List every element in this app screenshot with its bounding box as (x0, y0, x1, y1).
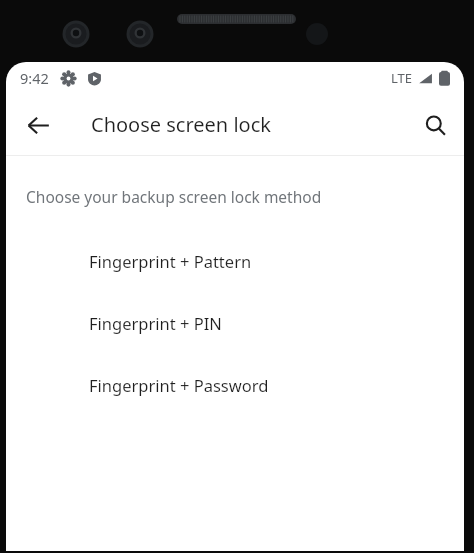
staticText: Fingerprint + Pattern (89, 250, 252, 272)
button[interactable]: Fingerprint + Password (6, 354, 464, 416)
staticText: Fingerprint + Password (89, 374, 269, 396)
button[interactable]: Fingerprint + PIN (6, 292, 464, 354)
staticText: 9:42 (20, 68, 49, 88)
button[interactable]: Fingerprint + Pattern (6, 230, 464, 292)
staticText: Fingerprint + PIN (89, 312, 222, 334)
button[interactable]: Back (16, 103, 60, 147)
staticText: Choose screen lock (91, 111, 271, 138)
button[interactable]: Search (413, 103, 457, 147)
staticText: LTE (391, 69, 413, 87)
staticText: Choose your backup screen lock method (26, 186, 322, 207)
